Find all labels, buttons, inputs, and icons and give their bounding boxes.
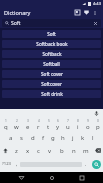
staticText: x [26,147,30,155]
staticText: o [86,123,90,131]
staticText: d [31,134,35,142]
button[interactable]: c [33,144,44,157]
button[interactable]: Softback [2,50,101,58]
button[interactable]: s [16,131,27,144]
button[interactable]: z [11,144,22,157]
staticText: . [85,161,87,168]
button[interactable]: k [78,131,88,144]
staticText: Dictionary [4,9,31,16]
button[interactable]: Search [89,157,103,171]
staticText: Soft cover [41,71,63,77]
button[interactable]: Favorites [82,8,91,17]
staticText: a [9,134,13,142]
staticText: ?123 [2,161,12,167]
button[interactable]: m [80,144,92,157]
staticText: u [66,123,70,131]
button[interactable]: 9 [83,118,93,131]
staticText: m [83,147,89,155]
button[interactable]: 8 [73,118,83,131]
button[interactable]: v [44,144,56,157]
button[interactable]: Flash cards [73,8,82,17]
button[interactable]: 2 [11,118,22,131]
button[interactable]: Home [42,172,62,183]
staticText: y [56,123,60,131]
button[interactable]: Softball [2,60,101,68]
button[interactable]: Soft drink [2,90,101,98]
button[interactable]: Clear search [92,20,98,26]
button[interactable]: g [48,131,58,144]
staticText: 4:43 [93,1,101,6]
staticText: Softball [43,61,60,67]
button[interactable]: More options [91,9,99,17]
staticText: r [37,123,40,131]
staticText: 0 [97,119,99,123]
staticText: Soft drink [41,91,63,97]
staticText: c [37,147,40,155]
button[interactable]: Soft [2,30,101,38]
button[interactable]: h [58,131,68,144]
staticText: s [20,134,23,142]
button[interactable]: Shift [0,144,11,157]
staticText: h [61,134,65,142]
button[interactable]: 3 [22,118,33,131]
staticText: j [72,134,74,142]
staticText: z [15,147,18,155]
staticText: 9 [87,119,89,123]
staticText: q [4,123,8,131]
staticText: t [47,123,50,131]
staticText: l [92,134,94,142]
button[interactable]: 1 [0,118,11,131]
button[interactable]: Backspace [92,144,103,157]
button[interactable]: x [22,144,33,157]
button[interactable]: b [56,144,68,157]
staticText: w [14,123,19,131]
staticText: 3 [27,119,29,123]
staticText: p [96,123,100,131]
staticText: Softback [42,51,62,57]
button[interactable]: n [68,144,80,157]
button[interactable]: d [27,131,38,144]
staticText: f [42,134,45,142]
staticText: 7 [67,119,69,123]
staticText: g [51,134,55,142]
staticText: e [26,123,30,131]
staticText: k [81,134,85,142]
staticText: Soft [11,20,21,27]
button[interactable]: Soft cover [2,70,101,78]
button[interactable]: j [68,131,78,144]
button[interactable]: Soft [2,19,101,27]
staticText: Softback book [36,41,68,47]
button[interactable]: ?123 [0,157,13,171]
staticText: Soft [47,31,56,37]
button[interactable]: Back [11,172,31,183]
button[interactable]: a [5,131,16,144]
staticText: Softcover [41,81,62,87]
button[interactable]: 0 [93,118,103,131]
staticText: v [48,147,52,155]
button[interactable]: Recent apps [72,172,92,183]
button[interactable]: 5 [43,118,53,131]
button[interactable]: 6 [53,118,63,131]
staticText: 1 [5,119,7,123]
staticText: n [72,147,76,155]
staticText: 2 [16,119,18,123]
staticText: 4 [38,119,40,123]
staticText: 8 [77,119,79,123]
staticText: 6 [57,119,59,123]
staticText: , [16,161,18,168]
staticText: 5 [48,119,50,123]
staticText: b [60,147,64,155]
button[interactable]: l [88,131,98,144]
button[interactable]: Voice input [93,110,100,117]
staticText: i [77,123,79,131]
button[interactable]: . [82,157,89,171]
button[interactable]: 7 [63,118,73,131]
button[interactable]: Softback book [2,40,101,48]
button[interactable]: f [38,131,48,144]
button[interactable]: , [13,157,20,171]
button[interactable]: Softcover [2,80,101,88]
button[interactable]: 4 [33,118,43,131]
